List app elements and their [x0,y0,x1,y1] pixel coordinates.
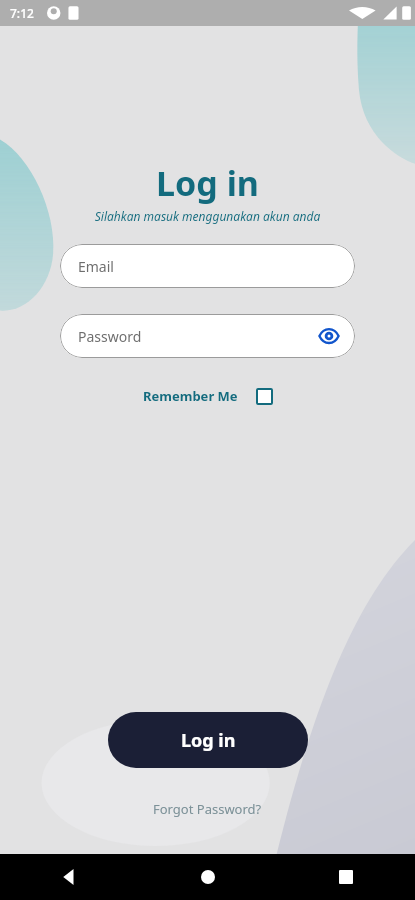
button[interactable]: Recent apps [277,854,415,900]
button[interactable]: Home [139,854,277,900]
button[interactable]: Log in [108,712,308,768]
button[interactable]: Remember Me [139,383,277,409]
button[interactable]: Show password [317,324,341,348]
button[interactable]: Back [0,854,139,900]
staticText: Silahkan masuk menggunakan akun anda [0,208,415,224]
staticText: Email [78,257,114,276]
button[interactable]: Forgot Password? [147,798,268,820]
staticText: Remember Me [143,387,238,405]
staticText: Password [78,327,142,346]
staticText: Log in [0,160,415,206]
button[interactable]: Email [60,244,355,288]
staticText: 7:12 [10,5,34,21]
staticText: Log in [181,728,236,753]
button[interactable]: Password [60,314,355,358]
